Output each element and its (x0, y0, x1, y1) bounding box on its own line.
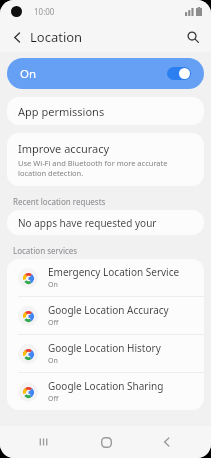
staticText: On (48, 356, 58, 366)
staticText: Google Location Sharing (48, 379, 164, 393)
staticText: Off (48, 318, 59, 328)
button[interactable]: On (7, 58, 204, 89)
button[interactable]: No apps have requested your location r.. (7, 210, 204, 235)
staticText: On (20, 66, 37, 82)
button[interactable]: Google Location History (7, 335, 204, 372)
button[interactable]: Google Location Sharing (7, 373, 204, 410)
staticText: App permissions (18, 104, 105, 119)
staticText: Off (48, 394, 59, 404)
staticText: Location (30, 28, 83, 46)
staticText: Location services (13, 245, 78, 256)
staticText: Use Wi-Fi and Bluetooth for more accurat… (18, 158, 193, 178)
button[interactable]: App permissions (7, 97, 204, 125)
staticText: Emergency Location Service (48, 265, 180, 279)
button[interactable]: Google Location Accuracy (7, 297, 204, 334)
button[interactable]: Home (89, 426, 123, 458)
button[interactable]: Recents (27, 426, 61, 458)
staticText: Improve accuracy (18, 141, 110, 156)
staticText: Google Location Accuracy (48, 303, 169, 317)
staticText: On (48, 280, 58, 290)
button[interactable]: Improve accuracy (7, 133, 204, 186)
staticText: 10:00 (34, 6, 55, 17)
staticText: Recent location requests (13, 196, 106, 207)
button[interactable]: Search (182, 26, 204, 48)
button[interactable]: Back (6, 26, 28, 48)
staticText: Google Location History (48, 341, 161, 355)
button[interactable]: Back (150, 426, 184, 458)
button[interactable]: Emergency Location Service (7, 259, 204, 296)
staticText: No apps have requested your location r.. (18, 216, 193, 230)
